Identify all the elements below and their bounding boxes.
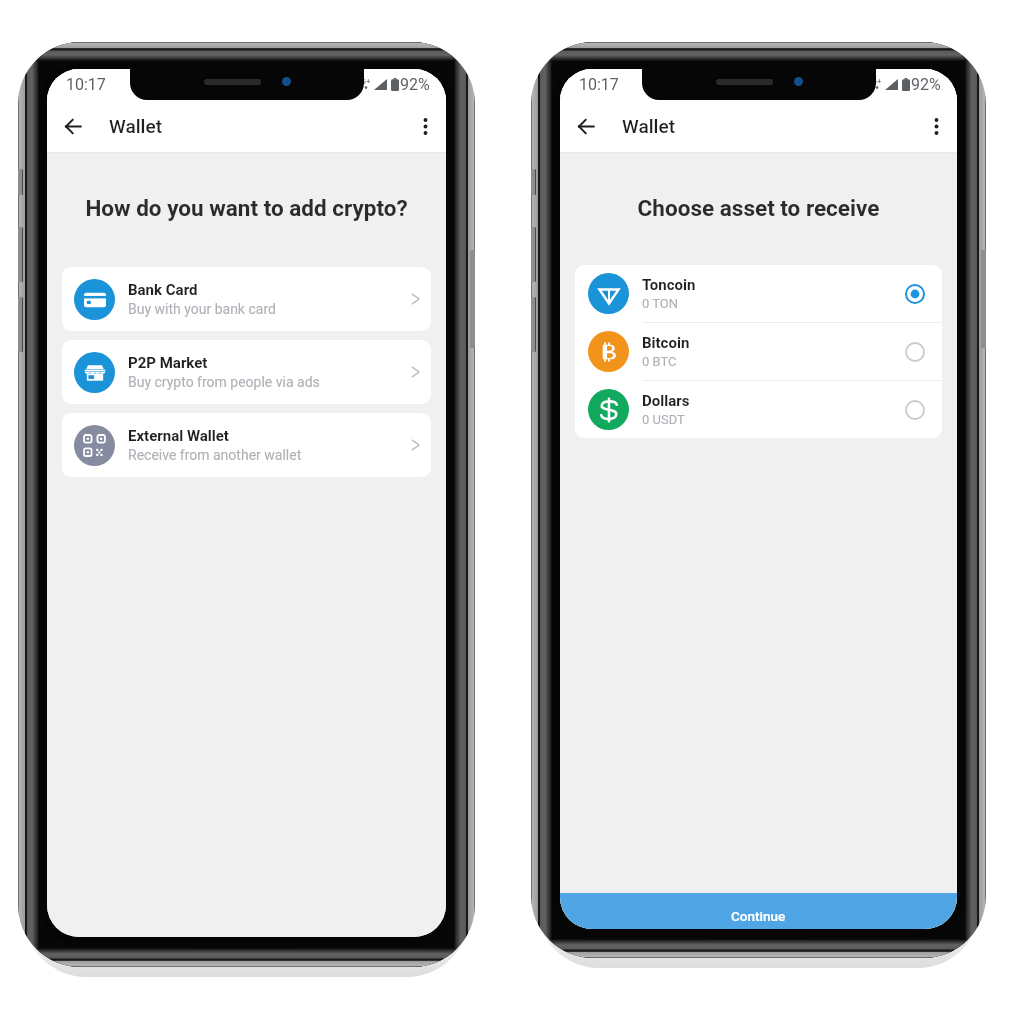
staticText: 10:17 — [579, 75, 619, 94]
button[interactable]: P2P Market — [62, 340, 431, 404]
staticText: Buy crypto from people via ads — [128, 374, 320, 390]
staticText: 92% — [911, 75, 941, 94]
staticText: 0 USDT — [642, 412, 685, 427]
staticText: 0 BTC — [642, 354, 677, 369]
staticText: How do you want to add crypto? — [47, 195, 446, 221]
staticText: 5G+ — [867, 77, 882, 86]
staticText: 5G+ — [356, 77, 371, 86]
button[interactable]: More options — [406, 107, 444, 145]
staticText: Wallet — [109, 115, 162, 137]
button[interactable]: Toncoin — [575, 265, 942, 322]
staticText: External Wallet — [128, 427, 229, 445]
staticText: Wallet — [622, 115, 675, 137]
staticText: Choose asset to receive — [560, 195, 957, 221]
staticText: Buy with your bank card — [128, 301, 276, 317]
button[interactable]: Bitcoin — [575, 323, 942, 380]
button[interactable]: Back — [567, 107, 605, 145]
staticText: 92% — [400, 75, 430, 94]
button[interactable]: Bank Card — [62, 267, 431, 331]
staticText: 0 TON — [642, 296, 679, 311]
button[interactable]: Dollars — [575, 381, 942, 438]
button[interactable]: Continue — [560, 893, 957, 929]
staticText: P2P Market — [128, 354, 208, 372]
button[interactable]: More options — [917, 107, 955, 145]
button[interactable]: External Wallet — [62, 413, 431, 477]
staticText: 10:17 — [66, 75, 106, 94]
button[interactable]: Back — [54, 107, 92, 145]
staticText: Dollars — [642, 392, 690, 410]
staticText: Continue — [731, 908, 786, 924]
staticText: Bitcoin — [642, 334, 690, 352]
staticText: Bank Card — [128, 281, 198, 299]
staticText: Toncoin — [642, 276, 696, 294]
staticText: Receive from another wallet — [128, 447, 302, 463]
